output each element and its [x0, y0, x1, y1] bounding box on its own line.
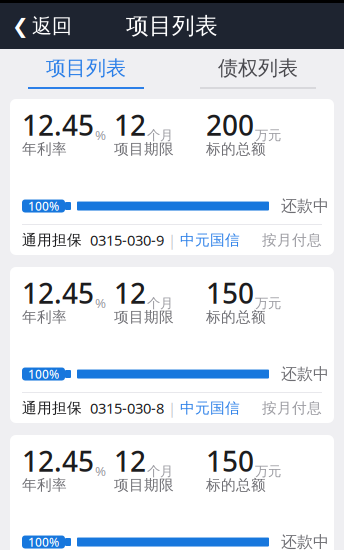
staticText: 12.45 [22, 442, 94, 480]
button[interactable]: 债权列表 [172, 49, 344, 89]
staticText: 项目列表 [126, 12, 218, 40]
staticText: 通用担保 [22, 231, 82, 249]
staticText: 返回 [32, 14, 72, 38]
staticText: 通用担保 [22, 399, 82, 417]
staticText: 万元 [255, 463, 281, 480]
button[interactable]: 项目列表 [0, 49, 172, 89]
staticText: 万元 [255, 295, 281, 312]
staticText: 150 [206, 274, 254, 312]
staticText: 个月 [147, 127, 173, 144]
staticText: % [95, 294, 106, 312]
staticText: 年利率 [22, 476, 67, 494]
staticText: 按月付息 [262, 231, 322, 249]
staticText: 项目期限 [114, 476, 174, 494]
staticText: 100% [28, 198, 59, 214]
staticText: 年利率 [22, 308, 67, 326]
staticText: 标的总额 [206, 476, 266, 494]
staticText: 个月 [147, 295, 173, 312]
staticText: 还款中 [281, 532, 329, 550]
staticText: 项目列表 [46, 56, 126, 80]
staticText: 项目期限 [114, 308, 174, 326]
staticText: | [168, 398, 180, 418]
staticText: 标的总额 [206, 140, 266, 158]
button[interactable]: 12.45 [10, 99, 334, 255]
staticText: 12.45 [22, 106, 94, 144]
staticText: 150 [206, 442, 254, 480]
staticText: 按月付息 [262, 399, 322, 417]
staticText: % [95, 126, 106, 144]
button[interactable]: 12.45 [10, 267, 334, 423]
button[interactable]: ❮ [0, 4, 84, 48]
staticText: ❮ [12, 15, 29, 37]
staticText: 个月 [147, 463, 173, 480]
staticText: 12 [114, 442, 146, 480]
button[interactable]: 12.45 [10, 435, 334, 550]
staticText: 12 [114, 274, 146, 312]
staticText: 债权列表 [218, 56, 298, 80]
staticText: 还款中 [281, 196, 329, 216]
staticText: % [95, 462, 106, 480]
staticText: 中元国信 [180, 399, 240, 417]
staticText: | [168, 230, 180, 250]
staticText: 0315-030-8 [82, 398, 168, 418]
staticText: 项目期限 [114, 140, 174, 158]
staticText: 还款中 [281, 364, 329, 384]
staticText: 100% [28, 534, 59, 550]
staticText: 标的总额 [206, 308, 266, 326]
staticText: 年利率 [22, 140, 67, 158]
staticText: 12.45 [22, 274, 94, 312]
staticText: 12 [114, 106, 146, 144]
staticText: 100% [28, 366, 59, 382]
staticText: 200 [206, 106, 254, 144]
staticText: 万元 [255, 127, 281, 144]
staticText: 中元国信 [180, 231, 240, 249]
staticText: 0315-030-9 [82, 230, 168, 250]
